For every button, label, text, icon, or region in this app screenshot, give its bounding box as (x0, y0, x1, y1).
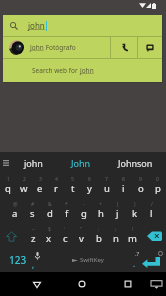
button[interactable]: 123 (0, 248, 36, 272)
staticText: ' (64, 226, 66, 233)
button[interactable]: 5 (64, 173, 81, 198)
staticText: * (65, 201, 68, 208)
button[interactable]: Recents (115, 272, 141, 296)
staticText: b (96, 232, 102, 245)
staticText: , (32, 259, 35, 270)
button[interactable]: ! (124, 223, 141, 248)
button[interactable]: ' (57, 223, 73, 248)
button[interactable]: $ (41, 223, 57, 248)
button[interactable]: 1 (0, 173, 16, 198)
button[interactable]: @ (6, 198, 24, 223)
staticText: + (99, 201, 102, 208)
button[interactable]: Home (69, 272, 95, 296)
button[interactable]: Space (50, 248, 125, 272)
button[interactable]: * (58, 198, 75, 223)
staticText: 3 (39, 176, 42, 183)
staticText: 6 (88, 176, 91, 183)
button[interactable]: Keyboard menu (0, 152, 11, 173)
staticText: 123 (9, 253, 27, 267)
staticText: w (20, 182, 28, 195)
button[interactable]: " (73, 223, 90, 248)
button[interactable]: 2 (16, 173, 32, 198)
button[interactable]: Search web for (3, 59, 162, 82)
staticText: ~ (32, 226, 35, 233)
staticText: ) (134, 201, 136, 208)
button[interactable]: Voice input (28, 248, 50, 272)
staticText: 8 (122, 176, 125, 183)
button[interactable]: 0 (149, 173, 166, 198)
staticText: d (47, 207, 53, 220)
button[interactable]: 7 (98, 173, 115, 198)
staticText: h (98, 207, 104, 220)
staticText: John (30, 43, 44, 52)
staticText: 7 (105, 176, 108, 183)
button[interactable]: - (75, 198, 92, 223)
button[interactable]: Shift (0, 223, 25, 248)
staticText: 4 (55, 176, 58, 183)
staticText: e (37, 182, 43, 195)
button[interactable]: ( (109, 198, 126, 223)
button[interactable]: 8 (115, 173, 132, 198)
staticText: ( (117, 201, 119, 208)
staticText: q (5, 182, 11, 195)
button[interactable]: ~ (25, 223, 41, 248)
button[interactable]: Hide keyboard (146, 272, 166, 296)
button[interactable]: Punctuation (125, 248, 147, 272)
button[interactable]: Back (24, 272, 50, 296)
staticText: u (104, 182, 110, 195)
staticText: 5 (71, 176, 74, 183)
other: Search (10, 22, 18, 30)
button[interactable]: 3 (32, 173, 48, 198)
button[interactable]: 6 (81, 173, 98, 198)
button[interactable]: Call (111, 37, 137, 58)
staticText: y (87, 182, 92, 195)
button[interactable]: John (3, 37, 110, 58)
button[interactable]: 9 (132, 173, 149, 198)
staticText: Johnson (118, 157, 153, 169)
staticText: john (24, 157, 43, 169)
staticText: .? (135, 250, 140, 258)
staticText: john (80, 66, 94, 75)
button[interactable]: & (41, 198, 58, 223)
button[interactable]: Backspace (141, 223, 166, 248)
staticText: / (151, 201, 153, 208)
staticText: m (128, 232, 137, 245)
button[interactable]: : (90, 223, 107, 248)
staticText: 2 (23, 176, 26, 183)
staticText: ; (115, 226, 117, 233)
button[interactable]: john (11, 152, 56, 173)
button[interactable]: Message (138, 37, 162, 58)
staticText: f (65, 207, 69, 220)
button[interactable]: John (56, 152, 105, 173)
staticText: g (81, 207, 87, 220)
staticText: Search web for (32, 66, 80, 75)
staticText: Fotógrafo (44, 43, 76, 52)
button[interactable]: ; (107, 223, 124, 248)
staticText: o (138, 182, 144, 195)
button[interactable]: ) (126, 198, 143, 223)
staticText: a (12, 207, 18, 220)
staticText: : (98, 226, 100, 233)
staticText: t (71, 182, 75, 195)
button[interactable]: + (92, 198, 109, 223)
staticText: l (150, 207, 153, 220)
staticText: 9 (139, 176, 142, 183)
staticText: r (54, 182, 58, 195)
button[interactable]: Johnson (105, 152, 166, 173)
button[interactable]: 4 (48, 173, 64, 198)
staticText: - (83, 201, 85, 208)
button[interactable]: # (24, 198, 41, 223)
staticText: 0 (156, 176, 159, 183)
staticText: " (80, 226, 83, 233)
staticText: @ (13, 201, 18, 208)
staticText: v (79, 232, 84, 245)
staticText: . (133, 258, 136, 269)
button[interactable]: Search (3, 15, 162, 36)
button[interactable]: Enter (136, 248, 166, 272)
staticText: john (28, 20, 45, 31)
staticText: 1 (7, 176, 10, 183)
staticText: John (71, 157, 91, 169)
staticText: k (132, 207, 138, 220)
button[interactable]: / (143, 198, 160, 223)
staticText: x (46, 232, 52, 245)
